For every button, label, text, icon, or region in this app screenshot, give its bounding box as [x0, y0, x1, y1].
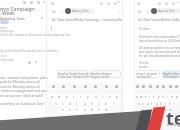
staticText: g: [156, 102, 158, 106]
staticText: r: [149, 95, 151, 99]
button[interactable]: [159, 100, 163, 106]
button[interactable]: [63, 94, 70, 100]
button[interactable]: [74, 100, 81, 106]
button[interactable]: [141, 107, 145, 113]
staticText: v: [84, 108, 86, 112]
staticText: o: [109, 95, 111, 99]
button[interactable]: [89, 107, 96, 113]
staticText: we can use our rolled results?: [0, 94, 44, 98]
button[interactable]: [168, 100, 172, 106]
staticText: v: [177, 9, 179, 13]
button[interactable]: [81, 100, 88, 106]
button[interactable]: [70, 94, 77, 100]
staticText: +: [147, 9, 149, 13]
button[interactable]: [168, 107, 172, 113]
staticText: z: [142, 108, 144, 112]
button[interactable]: [155, 100, 159, 106]
staticText: w: [140, 95, 143, 99]
button[interactable]: [148, 94, 152, 100]
button[interactable]: [164, 100, 168, 106]
staticText: of Tuesday a: [163, 75, 179, 79]
staticText: h: [160, 102, 162, 106]
button[interactable]: [137, 100, 141, 106]
staticText: c: [151, 108, 153, 112]
staticText: n: [98, 108, 100, 112]
staticText: o: [171, 95, 173, 99]
button[interactable]: [144, 94, 148, 100]
other: Keyboard action: [94, 85, 97, 88]
button[interactable]: [155, 107, 159, 113]
button[interactable]: [173, 100, 177, 106]
staticText: a: [138, 102, 140, 106]
staticText: i: [167, 95, 168, 99]
button[interactable]: [162, 70, 180, 78]
button[interactable]: [67, 107, 74, 113]
button[interactable]: [90, 70, 121, 78]
button[interactable]: [49, 94, 56, 100]
staticText: ents Campaign:: [0, 6, 36, 13]
staticText: y: [87, 95, 89, 99]
button[interactable]: [151, 8, 180, 14]
staticText: f: [151, 102, 152, 106]
staticText: Another Kan: [163, 72, 179, 76]
button[interactable]: [85, 94, 92, 100]
staticText: Re: New Social Media Campaig: [138, 18, 180, 22]
button[interactable]: [141, 100, 145, 106]
staticText: r: [73, 95, 75, 99]
staticText: d: [69, 102, 71, 106]
button[interactable]: [157, 94, 161, 100]
staticText: te: [166, 106, 180, 130]
button[interactable]: [166, 94, 170, 100]
button[interactable]: [65, 8, 95, 14]
button[interactable]: [96, 100, 103, 106]
button[interactable]: [89, 100, 96, 106]
staticText: x: [69, 108, 71, 112]
button[interactable]: [57, 70, 88, 78]
button[interactable]: [114, 94, 121, 100]
staticText: p: [176, 95, 178, 99]
staticText: l: [113, 102, 114, 106]
staticText: to me: [0, 54, 7, 58]
staticText: To: [52, 9, 56, 13]
button[interactable]: [52, 100, 59, 106]
button[interactable]: [170, 94, 174, 100]
staticText: Thanks for the confirmation! The: [139, 35, 180, 39]
button[interactable]: [74, 107, 81, 113]
other: Keyboard action: [73, 85, 76, 88]
button[interactable]: [164, 107, 168, 113]
button[interactable]: [146, 107, 150, 113]
button[interactable]: [103, 100, 110, 106]
button[interactable]: [92, 94, 99, 100]
staticText: j: [98, 102, 99, 106]
button[interactable]: [67, 100, 74, 106]
staticText: u: [162, 95, 164, 99]
button[interactable]: [110, 100, 117, 106]
button[interactable]: [139, 94, 143, 100]
button[interactable]: [103, 107, 110, 113]
staticText: Another Kanban board is - sugge: [58, 72, 100, 76]
button[interactable]: [81, 107, 88, 113]
staticText: and the flo: [137, 75, 151, 79]
staticText: t: [153, 95, 155, 99]
button[interactable]: [60, 107, 67, 113]
staticText: h: [91, 102, 93, 106]
button[interactable]: [107, 94, 114, 100]
staticText: technology: [167, 123, 180, 127]
button[interactable]: [153, 94, 157, 100]
button[interactable]: [60, 100, 67, 106]
button[interactable]: [56, 94, 63, 100]
button[interactable]: [150, 107, 154, 113]
button[interactable]: [135, 94, 139, 100]
button[interactable]: [150, 100, 154, 106]
button[interactable]: [161, 94, 165, 100]
staticText: eam, achieve setting lower plans: [0, 76, 48, 80]
button[interactable]: [146, 100, 150, 106]
staticText: n: [165, 108, 167, 112]
button[interactable]: [136, 70, 160, 78]
button[interactable]: [96, 107, 103, 113]
button[interactable]: [100, 94, 107, 100]
button[interactable]: [78, 94, 85, 100]
button[interactable]: [175, 94, 179, 100]
other: Keyboard action: [156, 85, 159, 88]
